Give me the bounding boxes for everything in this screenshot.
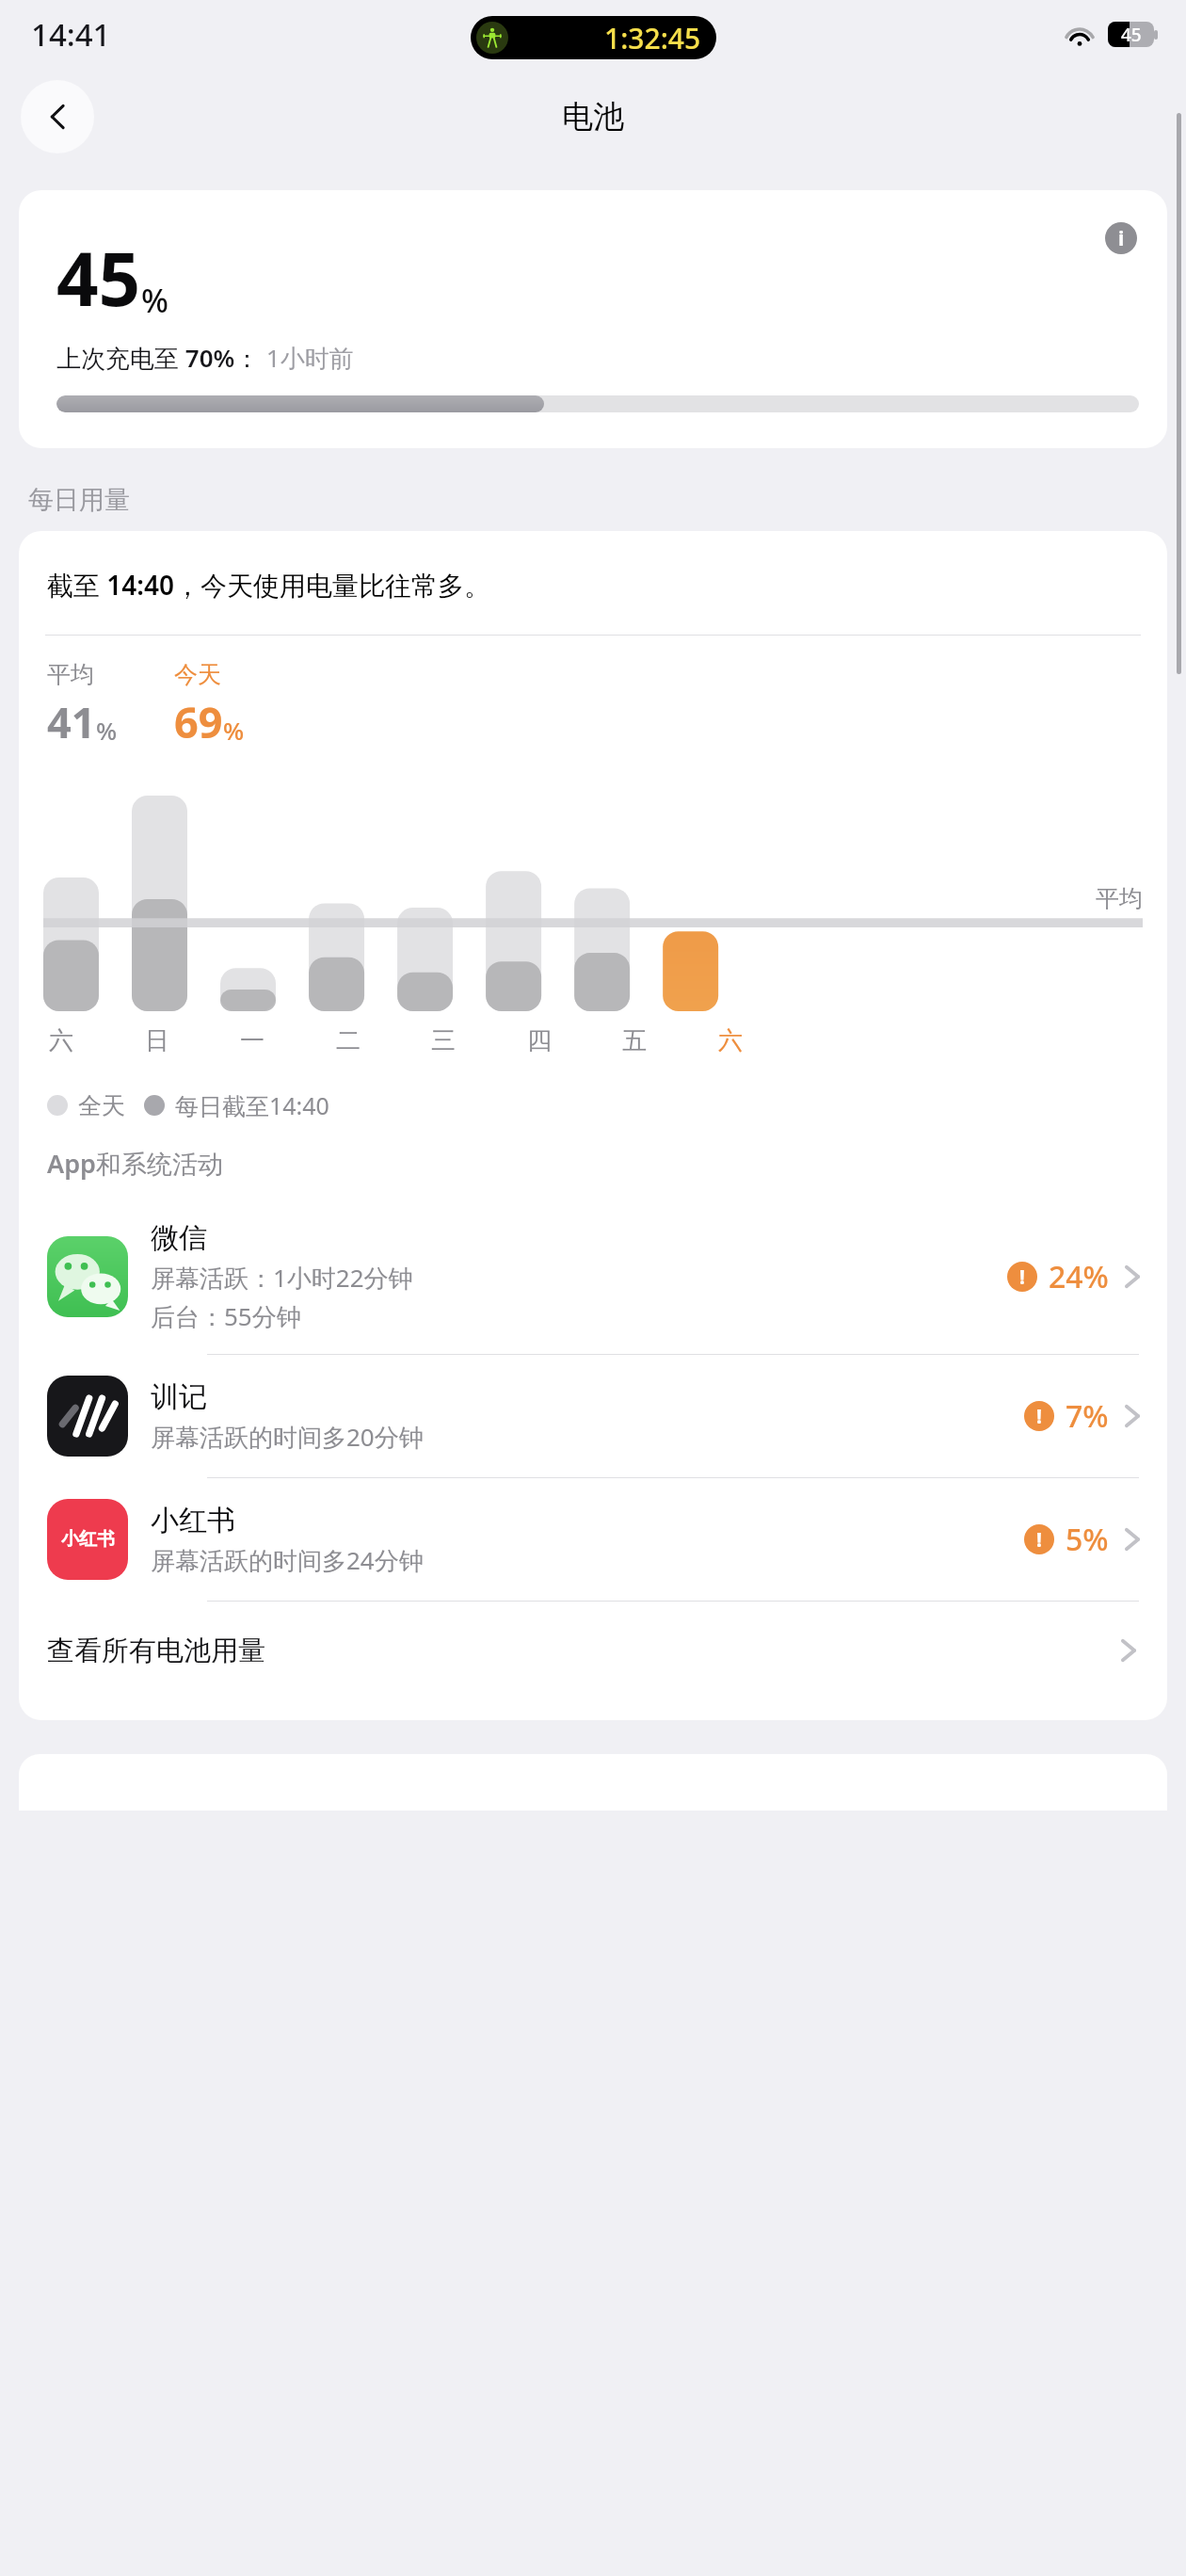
staticText: 平均 <box>47 660 94 689</box>
button[interactable]: 查看所有电池用量 <box>19 1602 1167 1699</box>
staticText: 全天 <box>78 1091 125 1120</box>
staticText: % <box>96 714 118 747</box>
staticText: 每日截至14:40 <box>175 1089 329 1121</box>
staticText: 三 <box>431 1025 456 1056</box>
staticText: 今天 <box>174 660 221 689</box>
staticText: 45 <box>1121 23 1142 47</box>
staticText: % <box>223 714 245 747</box>
staticText: 屏幕活跃的时间多24分钟 <box>151 1543 424 1577</box>
staticText: App和系统活动 <box>47 1146 223 1181</box>
staticText: 四 <box>527 1025 552 1056</box>
staticText: 一 <box>240 1025 264 1056</box>
staticText: 14:41 <box>31 13 111 56</box>
staticText: 24% <box>1049 1256 1109 1297</box>
button[interactable]: 训记 <box>19 1355 1167 1477</box>
staticText: 小红书 <box>151 1503 235 1538</box>
staticText: 7% <box>1066 1395 1109 1437</box>
staticText: ! <box>1036 1526 1042 1554</box>
staticText: ! <box>1019 1264 1025 1291</box>
button[interactable]: 信息 <box>1103 220 1139 256</box>
button[interactable]: 返回 <box>21 80 94 153</box>
staticText: 41 <box>47 693 96 750</box>
staticText: ! <box>1036 1403 1042 1430</box>
staticText: 六 <box>49 1025 73 1056</box>
staticText: 截至 14:40，今天使用电量比往常多。 <box>47 567 491 603</box>
staticText: 45 <box>56 228 141 328</box>
button[interactable]: 微信 <box>19 1199 1167 1354</box>
staticText: 1:32:45 <box>604 19 701 57</box>
staticText: 电池 <box>562 97 624 137</box>
staticText: 后台：55分钟 <box>151 1299 301 1333</box>
staticText: i <box>1118 225 1125 252</box>
staticText: 微信 <box>151 1220 207 1256</box>
staticText: 二 <box>336 1025 361 1056</box>
staticText: 日 <box>145 1025 169 1056</box>
button[interactable]: 小红书 <box>19 1478 1167 1601</box>
staticText: 5% <box>1066 1519 1109 1560</box>
staticText: 六 <box>718 1025 743 1056</box>
staticText: 五 <box>622 1025 647 1056</box>
staticText: 1小时前 <box>260 341 354 375</box>
staticText: 屏幕活跃：1小时22分钟 <box>151 1261 413 1295</box>
staticText: 小红书 <box>61 1528 115 1551</box>
staticText: 69 <box>174 693 223 750</box>
staticText: 训记 <box>151 1379 207 1415</box>
staticText: 查看所有电池用量 <box>47 1634 265 1668</box>
staticText: 平均 <box>1096 884 1143 913</box>
staticText: % <box>141 279 168 322</box>
staticText: 每日用量 <box>28 484 130 516</box>
staticText: 屏幕活跃的时间多20分钟 <box>151 1420 424 1454</box>
staticText: 上次充电至 70%： <box>56 341 260 375</box>
